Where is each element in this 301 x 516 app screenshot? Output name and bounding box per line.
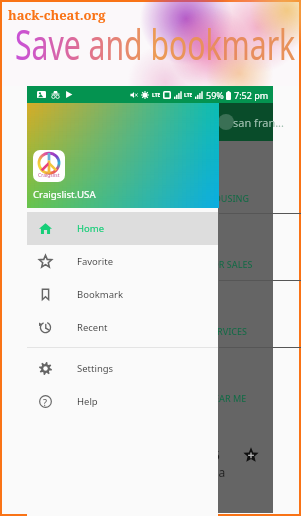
- staticText: Save and bookmark: [15, 16, 296, 72]
- staticText: 7:52 pm: [234, 89, 269, 101]
- staticText: Craigslist.USA: [33, 188, 96, 201]
- staticText: na: [211, 464, 226, 480]
- staticText: HOUSING: [207, 192, 250, 204]
- button[interactable]: Settings: [27, 352, 218, 385]
- button[interactable]: Home: [27, 212, 218, 245]
- staticText: LTE: [152, 92, 161, 99]
- button[interactable]: Favorite: [27, 245, 218, 278]
- button[interactable]: Recent: [27, 311, 218, 344]
- staticText: hack-cheat.org: [8, 6, 106, 24]
- staticText: Favorite: [77, 255, 113, 268]
- staticText: Bookmark: [77, 288, 123, 301]
- staticText: san fran...: [233, 115, 285, 130]
- button[interactable]: Bookmark: [27, 278, 218, 311]
- staticText: LTE: [184, 92, 193, 99]
- staticText: Home: [77, 222, 105, 235]
- staticText: 59%: [206, 89, 224, 101]
- staticText: Craigslist: [38, 172, 60, 179]
- staticText: Help: [77, 395, 98, 408]
- staticText: ?: [43, 396, 48, 408]
- staticText: SERVICES: [207, 325, 248, 337]
- staticText: Recent: [77, 321, 108, 334]
- staticText: 5: [213, 447, 220, 463]
- staticText: Settings: [77, 362, 114, 375]
- staticText: NEAR ME: [207, 392, 247, 404]
- button[interactable]: ?: [27, 385, 218, 418]
- staticText: FOR SALES: [207, 258, 253, 270]
